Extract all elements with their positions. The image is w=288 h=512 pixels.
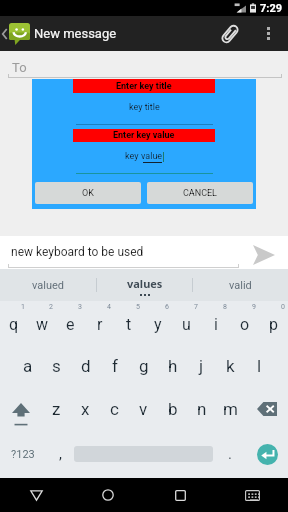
button[interactable]: b: [158, 387, 187, 430]
button[interactable]: ?123: [0, 430, 46, 478]
button[interactable]: g: [129, 344, 158, 387]
button[interactable]: n: [187, 387, 216, 430]
staticText: 0: [281, 303, 285, 311]
button[interactable]: v: [129, 387, 158, 430]
staticText: b: [168, 399, 178, 419]
button[interactable]: Attach: [212, 16, 248, 51]
button[interactable]: 5: [114, 301, 143, 344]
staticText: 1: [21, 303, 25, 311]
staticText: valid: [229, 279, 252, 292]
staticText: q: [9, 315, 19, 334]
button[interactable]: Switch keyboard: [216, 478, 288, 512]
staticText: x: [81, 399, 90, 419]
button[interactable]: a: [13, 344, 42, 387]
button[interactable]: Send: [244, 236, 284, 269]
staticText: 9: [252, 303, 256, 311]
button[interactable]: values: [97, 269, 192, 301]
button[interactable]: CANCEL: [147, 182, 253, 204]
button[interactable]: valued: [0, 269, 96, 301]
staticText: o: [240, 315, 250, 334]
button[interactable]: k: [216, 344, 245, 387]
staticText: ,: [59, 445, 62, 463]
staticText: New message: [34, 26, 117, 41]
staticText: 7: [194, 303, 198, 311]
staticText: a: [23, 356, 33, 376]
button[interactable]: x: [71, 387, 100, 430]
staticText: s: [52, 356, 61, 376]
staticText: 2: [49, 303, 53, 311]
staticText: Enter key title: [116, 81, 172, 92]
staticText: u: [182, 315, 191, 334]
staticText: i: [214, 315, 218, 334]
button[interactable]: l: [245, 344, 274, 387]
button[interactable]: OK: [35, 182, 141, 204]
staticText: h: [168, 356, 178, 376]
staticText: r: [97, 315, 103, 334]
button[interactable]: 6: [143, 301, 172, 344]
button[interactable]: h: [158, 344, 187, 387]
staticText: n: [197, 399, 207, 419]
staticText: 5: [136, 303, 140, 311]
button[interactable]: Back: [0, 478, 72, 512]
staticText: OK: [82, 188, 94, 199]
staticText: key: [125, 151, 141, 162]
staticText: m: [223, 399, 238, 419]
button[interactable]: 8: [201, 301, 230, 344]
staticText: j: [199, 356, 204, 376]
staticText: 6: [165, 303, 169, 311]
button[interactable]: z: [42, 387, 71, 430]
button[interactable]: ,: [46, 430, 74, 478]
button[interactable]: 7: [172, 301, 201, 344]
button[interactable]: 3: [56, 301, 85, 344]
staticText: t: [126, 315, 132, 334]
button[interactable]: Navigate up: [0, 16, 9, 51]
button[interactable]: 0: [259, 301, 288, 344]
button[interactable]: c: [100, 387, 129, 430]
button[interactable]: Home: [72, 478, 144, 512]
staticText: d: [81, 356, 91, 376]
button[interactable]: .: [213, 430, 246, 478]
staticText: 8: [223, 303, 227, 311]
staticText: values: [127, 276, 163, 291]
staticText: z: [52, 399, 61, 419]
button[interactable]: s: [42, 344, 71, 387]
staticText: c: [110, 399, 119, 419]
staticText: 4: [107, 303, 111, 311]
button[interactable]: d: [71, 344, 100, 387]
staticText: CANCEL: [183, 188, 217, 199]
button[interactable]: 4: [85, 301, 114, 344]
button[interactable]: j: [187, 344, 216, 387]
staticText: ?123: [11, 448, 35, 461]
staticText: 7:29: [260, 2, 283, 15]
button[interactable]: m: [216, 387, 245, 430]
button[interactable]: 9: [230, 301, 259, 344]
button[interactable]: Enter: [257, 444, 278, 465]
staticText: .: [228, 445, 232, 463]
button[interactable]: More options: [248, 16, 288, 51]
staticText: v: [139, 399, 148, 419]
staticText: w: [36, 315, 49, 334]
staticText: To: [12, 60, 27, 75]
staticText: key title: [129, 102, 160, 113]
staticText: Enter key value: [113, 130, 175, 141]
button[interactable]: f: [100, 344, 129, 387]
staticText: k: [226, 356, 235, 376]
button[interactable]: Recent apps: [144, 478, 216, 512]
button[interactable]: Shift: [0, 387, 42, 430]
staticText: e: [66, 315, 75, 334]
staticText: p: [269, 315, 278, 334]
staticText: l: [257, 356, 262, 376]
button[interactable]: Backspace: [245, 387, 288, 430]
staticText: 3: [78, 303, 82, 311]
staticText: value: [141, 151, 163, 162]
staticText: f: [112, 356, 118, 376]
button[interactable]: valid: [193, 269, 288, 301]
button[interactable]: 1: [0, 301, 28, 344]
staticText: y: [154, 315, 162, 334]
staticText: new keyboard to be used: [11, 245, 144, 259]
staticText: g: [139, 356, 149, 376]
button[interactable]: 2: [28, 301, 56, 344]
staticText: valued: [32, 279, 65, 292]
